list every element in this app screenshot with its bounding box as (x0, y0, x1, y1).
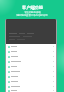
button[interactable] (6, 49, 56, 54)
staticText: 随时随地查看订单与信息详情 (16, 14, 48, 17)
button[interactable] (6, 44, 56, 49)
button[interactable] (6, 64, 56, 69)
button[interactable] (6, 89, 56, 92)
button[interactable] (6, 74, 56, 79)
button[interactable] (6, 54, 56, 59)
button[interactable] (6, 79, 56, 84)
button[interactable] (6, 59, 56, 64)
staticText: 客户端功能 (22, 5, 43, 10)
button[interactable] (6, 84, 56, 89)
staticText: 专业的服务体验 (24, 11, 41, 14)
button[interactable] (6, 69, 56, 74)
